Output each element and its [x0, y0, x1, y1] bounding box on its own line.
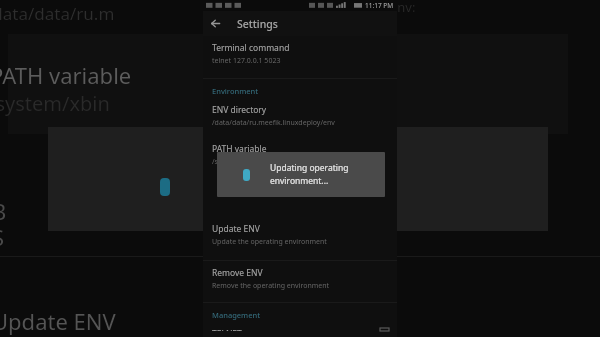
staticText: Update the operating environment [212, 237, 327, 247]
staticText: Remove ENV [212, 267, 263, 279]
staticText: Terminal command [212, 42, 290, 54]
staticText: ENV directory [212, 104, 267, 116]
staticText: /system/xbin [0, 90, 110, 117]
staticText: environment... [270, 175, 329, 187]
staticText: Settings [237, 17, 278, 31]
staticText: /data/data/ru.meefik.linuxdeploy/env [212, 118, 335, 128]
staticText: S [0, 222, 5, 252]
button[interactable]: Terminal command [203, 36, 397, 72]
staticText: Updating operating [270, 162, 349, 174]
staticText: /data/data/ru.m [0, 2, 115, 25]
button[interactable]: Update ENV [203, 217, 397, 253]
button[interactable]: ENV directory [203, 98, 397, 134]
button[interactable]: Back [203, 11, 228, 36]
staticText: env: [390, 0, 416, 16]
button[interactable]: PATH variable [203, 137, 397, 173]
staticText: B [0, 196, 7, 226]
staticText: 11:17 PM [365, 1, 394, 10]
button[interactable]: Updating operating [217, 152, 385, 197]
staticText: Environment [212, 86, 259, 96]
staticText: Remove the operating environment [212, 281, 330, 291]
button[interactable]: Remove ENV [203, 261, 397, 297]
staticText: telnet 127.0.0.1 5023 [212, 56, 281, 66]
other: Toggle [380, 328, 389, 331]
staticText: Update ENV [0, 306, 116, 336]
staticText: Update ENV [212, 223, 260, 235]
staticText: PATH variable [0, 60, 132, 90]
staticText: Management [212, 310, 261, 320]
staticText: PATH variable [212, 143, 267, 155]
staticText: TELNET [212, 328, 242, 331]
staticText: /system/xbin [212, 157, 255, 167]
button[interactable]: TELNET [203, 322, 397, 337]
